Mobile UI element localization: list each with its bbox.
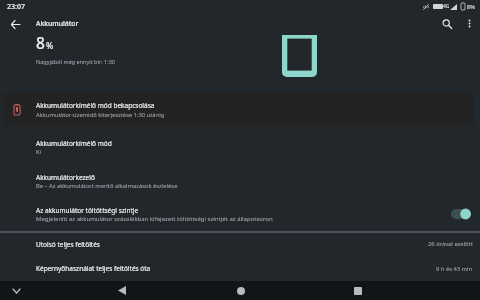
staticText: 23:07 bbox=[7, 2, 25, 12]
button[interactable]: Show battery percentage, on bbox=[449, 205, 473, 223]
staticText: Be – Az akkumulátort merítő alkalmazások… bbox=[36, 182, 178, 190]
staticText: Akkumulátorkezelő bbox=[36, 173, 95, 182]
staticText: 8% bbox=[467, 3, 475, 10]
staticText: Utolsó teljes feltöltés bbox=[36, 240, 100, 249]
staticText: Akkumulátor bbox=[36, 19, 79, 28]
staticText: Akkumulátor-üzemidő kiterjesztése 1:30 u… bbox=[36, 111, 165, 119]
button[interactable]: Az akkumulátor töltöttségi szintje bbox=[0, 198, 480, 228]
button[interactable]: Akkumulátorkezelő bbox=[0, 165, 480, 195]
staticText: Akkumulátorkímélő mód bekapcsolása bbox=[36, 101, 155, 110]
staticText: Megjeleníti az akkumulátor százalékban k… bbox=[36, 215, 273, 223]
button[interactable]: Back bbox=[113, 282, 130, 299]
button[interactable]: Akkumulátorkímélő mód bekapcsolása bbox=[3, 92, 474, 126]
button[interactable]: Hide bbox=[8, 282, 25, 299]
staticText: Nagyjából még ennyit bír: 1:30 bbox=[36, 58, 116, 65]
staticText: 8 bbox=[36, 32, 45, 53]
staticText: Az akkumulátor töltöttségi szintje bbox=[36, 206, 139, 215]
staticText: 26 órával ezelőtt bbox=[428, 240, 473, 248]
button[interactable]: More options bbox=[458, 12, 480, 34]
staticText: Akkumulátorkímélő mód bbox=[36, 139, 112, 148]
staticText: % bbox=[46, 40, 54, 52]
button[interactable]: Utolsó teljes feltöltés bbox=[0, 232, 480, 256]
button[interactable]: Recent apps bbox=[349, 282, 366, 299]
button[interactable]: Home bbox=[232, 282, 249, 299]
button[interactable]: Search bbox=[435, 12, 458, 35]
staticText: 4G bbox=[443, 3, 450, 10]
staticText: 9 h és 43 min bbox=[436, 265, 473, 273]
button[interactable]: Navigate up bbox=[3, 12, 27, 36]
button[interactable]: Akkumulátorkímélő mód bbox=[0, 131, 480, 161]
staticText: Képernyőhasználat teljes feltöltés óta bbox=[36, 264, 151, 273]
staticText: Ki bbox=[36, 148, 42, 156]
button[interactable]: Képernyőhasználat teljes feltöltés óta bbox=[0, 256, 480, 280]
